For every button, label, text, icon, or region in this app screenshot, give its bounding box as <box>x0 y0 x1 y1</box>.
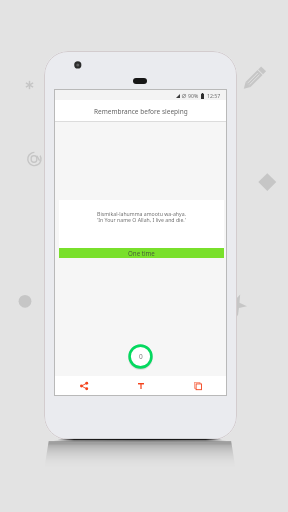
button[interactable]: Share <box>55 376 112 395</box>
staticText: One time <box>128 249 155 257</box>
button[interactable]: Text size <box>112 376 169 395</box>
staticText: Bismikal-lahumma amootu wa-ahya. 'In You… <box>97 210 186 223</box>
staticText: Remembrance before sleeping <box>94 107 188 116</box>
staticText: 90% <box>188 92 199 99</box>
button[interactable]: Counter <box>128 344 153 369</box>
button[interactable]: Copy <box>169 376 226 395</box>
button[interactable]: One time <box>59 248 224 258</box>
staticText: 0 <box>139 352 143 361</box>
staticText: 12:57 <box>207 92 221 99</box>
